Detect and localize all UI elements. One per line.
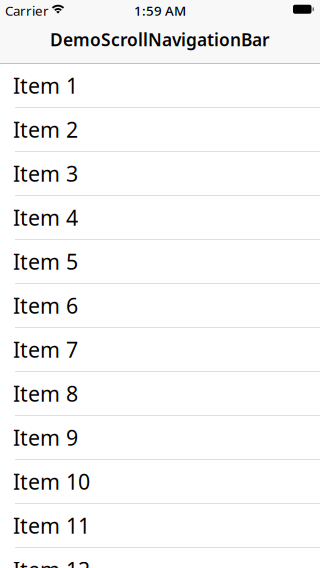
staticText: Item 3 <box>13 159 78 188</box>
staticText: Item 2 <box>13 115 78 144</box>
button[interactable]: Item 11 <box>0 504 320 548</box>
button[interactable]: Item 5 <box>0 240 320 284</box>
button[interactable]: Item 8 <box>0 372 320 416</box>
button[interactable]: Item 9 <box>0 416 320 460</box>
staticText: Item 6 <box>13 291 78 320</box>
button[interactable]: Item 7 <box>0 328 320 372</box>
staticText: Carrier <box>5 2 49 19</box>
staticText: Item 1 <box>13 71 78 100</box>
staticText: DemoScrollNavigationBar <box>50 28 270 51</box>
button[interactable]: Item 10 <box>0 460 320 504</box>
staticText: Item 10 <box>13 467 90 496</box>
staticText: 1:59 AM <box>134 2 186 19</box>
button[interactable]: Item 12 <box>0 548 320 568</box>
staticText: Item 4 <box>13 203 78 232</box>
staticText: Item 5 <box>13 247 78 276</box>
staticText: Item 8 <box>13 379 78 408</box>
staticText: Item 12 <box>13 555 90 568</box>
button[interactable]: Item 2 <box>0 108 320 152</box>
button[interactable]: Item 1 <box>0 64 320 108</box>
staticText: Item 11 <box>13 511 90 540</box>
button[interactable]: Item 6 <box>0 284 320 328</box>
button[interactable]: Item 4 <box>0 196 320 240</box>
button[interactable]: Item 3 <box>0 152 320 196</box>
staticText: Item 7 <box>13 335 78 364</box>
staticText: Item 9 <box>13 423 78 452</box>
